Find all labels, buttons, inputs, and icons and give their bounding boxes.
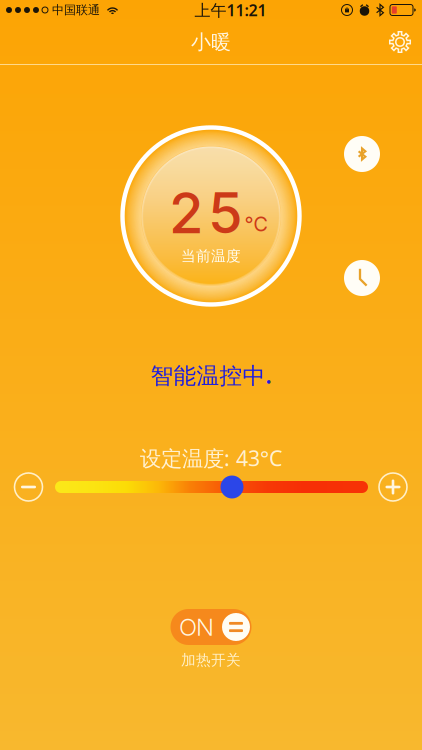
staticText: 中国联通: [52, 3, 100, 17]
staticText: 当前温度: [181, 247, 241, 265]
button[interactable]: Decrease temperature: [12, 471, 44, 503]
button[interactable]: Settings: [378, 20, 422, 64]
button[interactable]: Bluetooth: [344, 136, 380, 172]
staticText: ON: [179, 612, 214, 641]
staticText: 上午11:21: [194, 0, 266, 21]
staticText: 设定温度: 43°C: [140, 444, 282, 472]
staticText: 小暖: [191, 30, 231, 54]
staticText: 25: [169, 179, 243, 247]
staticText: 智能温控中.: [150, 360, 271, 390]
staticText: ℃: [244, 212, 267, 236]
button[interactable]: Heating switch on: [170, 609, 251, 645]
button[interactable]: Timer: [344, 260, 380, 296]
button[interactable]: Increase temperature: [377, 471, 409, 503]
staticText: 加热开关: [181, 651, 241, 669]
